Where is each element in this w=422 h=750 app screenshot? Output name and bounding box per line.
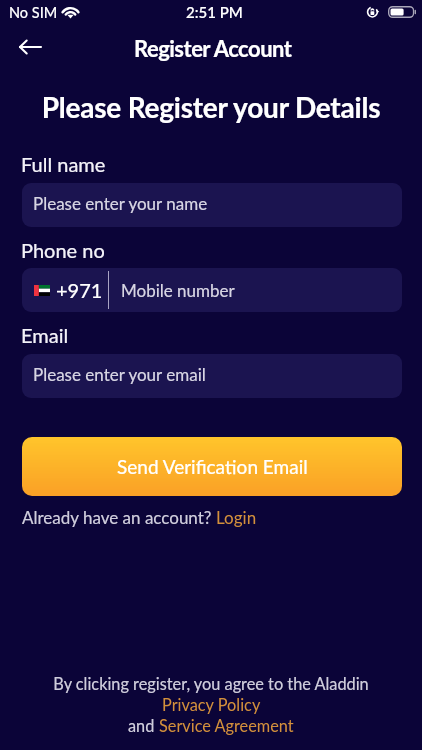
button[interactable]: Send Verification Email [22, 437, 402, 496]
staticText: Send Verification Email [117, 455, 308, 478]
staticText: Register Account [134, 35, 292, 61]
staticText: Mobile number [121, 280, 235, 300]
staticText: and [128, 716, 159, 736]
staticText: +971 [56, 278, 103, 302]
staticText: Privacy Policy [162, 695, 261, 715]
staticText: 2:51 PM [186, 3, 243, 21]
button[interactable]: Service Agreement [159, 716, 294, 736]
staticText: Phone no [21, 238, 105, 262]
staticText: Please Register your Details [0, 90, 422, 124]
staticText: Service Agreement [159, 716, 294, 736]
button[interactable]: Login [216, 507, 257, 527]
button[interactable]: +971 [22, 268, 402, 312]
staticText: By clicking register, you agree to the A… [0, 674, 422, 694]
button[interactable]: Back [12, 29, 48, 65]
staticText: Email [21, 323, 69, 347]
button[interactable]: Privacy Policy [162, 695, 261, 715]
button[interactable]: Please enter your email [22, 354, 402, 398]
staticText: Already have an account? [22, 507, 216, 527]
staticText: Login [216, 507, 257, 527]
staticText: Please enter your name [33, 193, 208, 213]
button[interactable]: Please enter your name [22, 183, 402, 227]
staticText: Please enter your email [33, 364, 206, 384]
staticText: No SIM [9, 4, 58, 21]
staticText: Full name [21, 152, 106, 176]
